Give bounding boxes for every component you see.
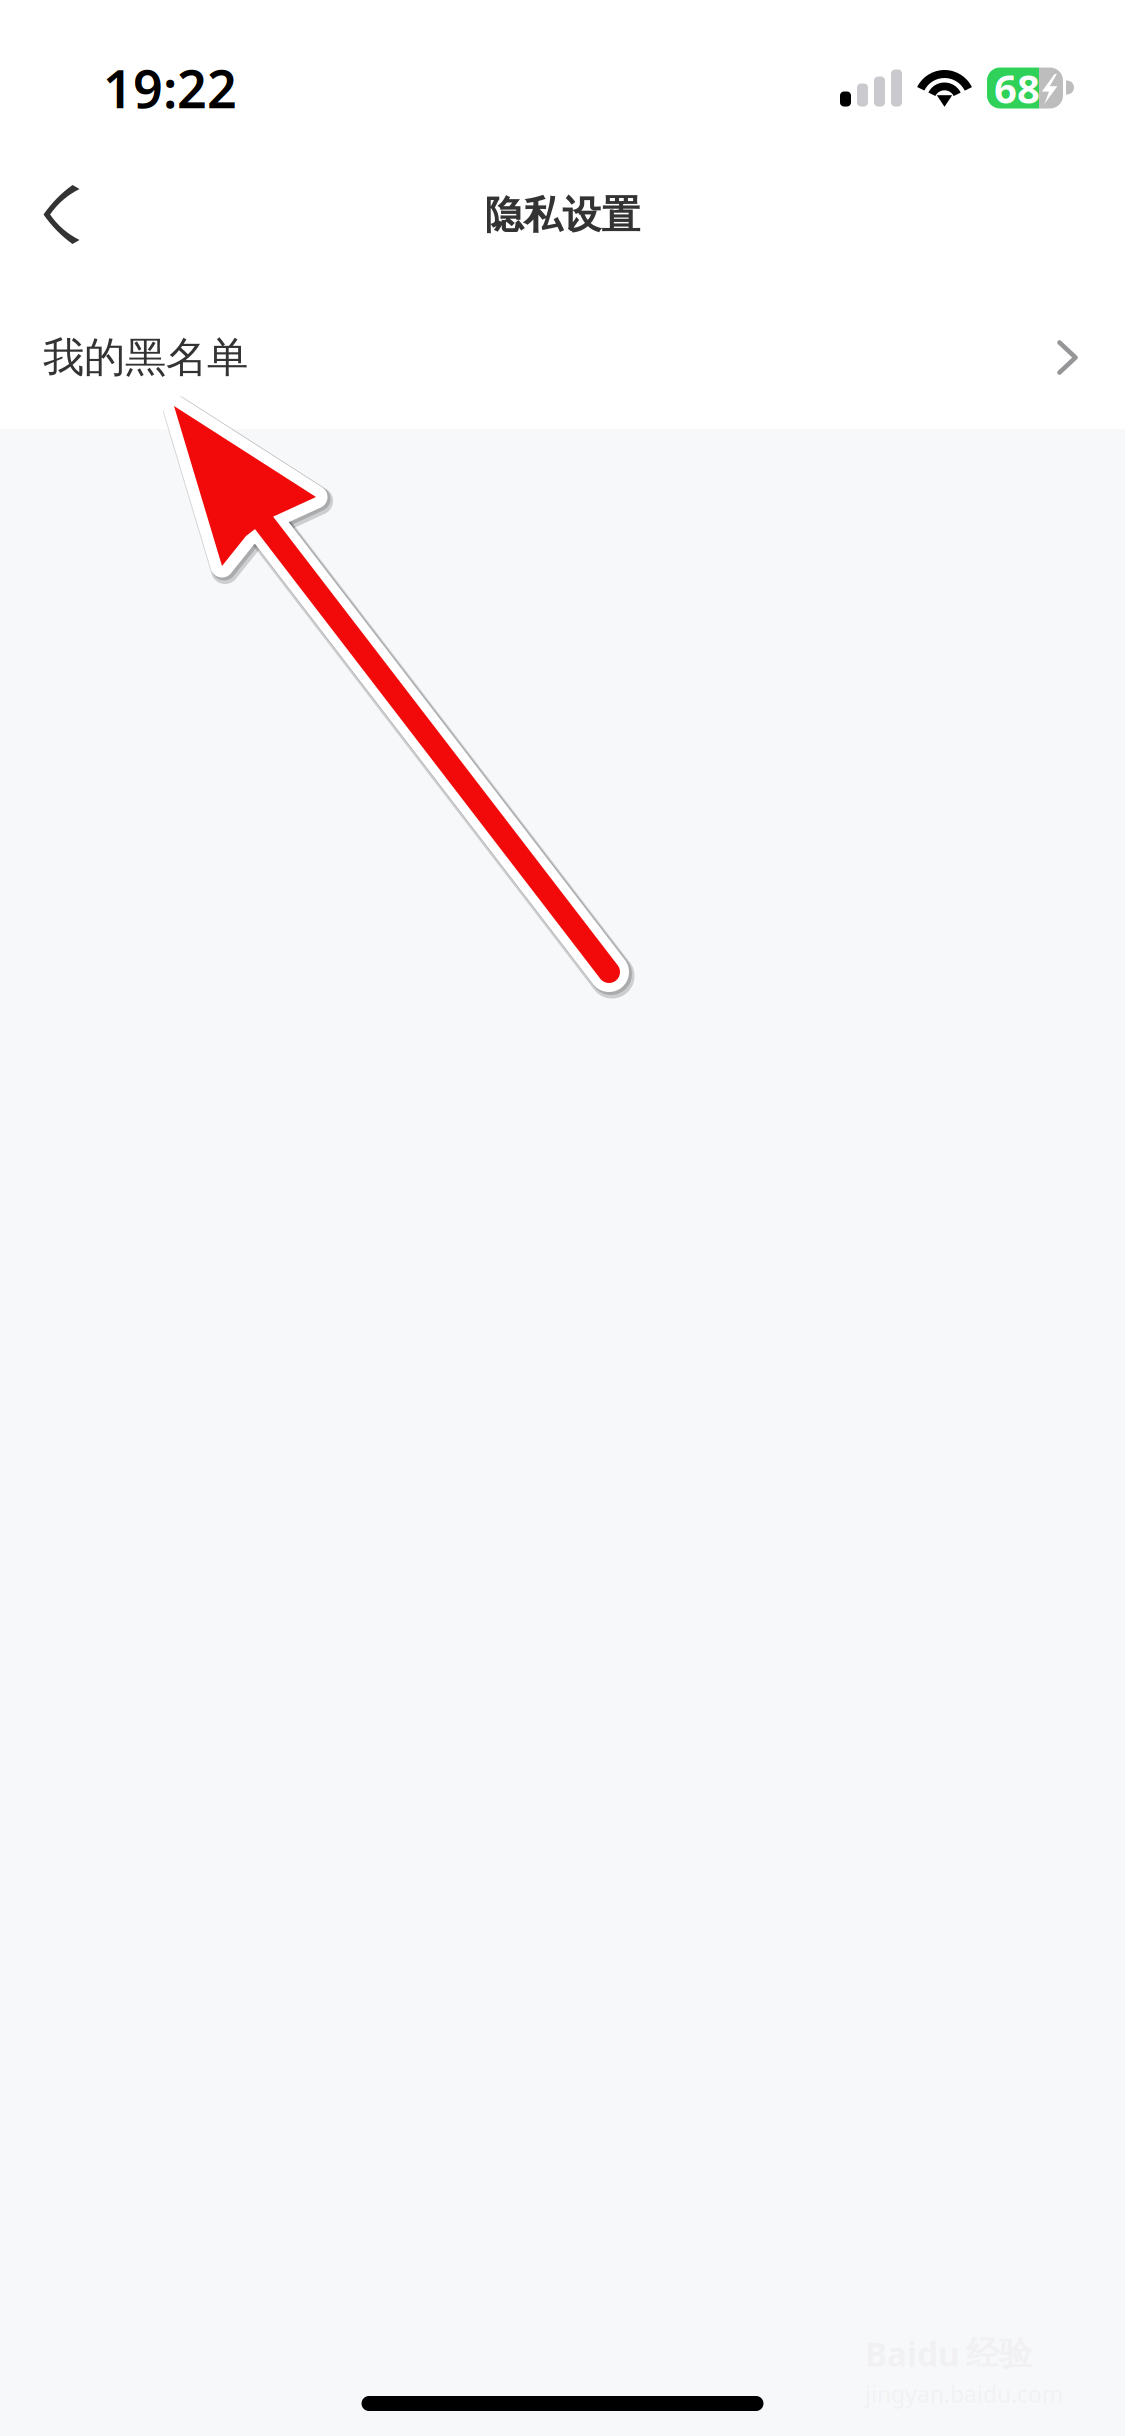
staticText: 经验 [966, 2333, 1032, 2374]
button[interactable]: Back [0, 160, 124, 270]
staticText: 68 [994, 61, 1040, 114]
staticText: 19:22 [103, 53, 237, 123]
staticText: 隐私设置 [484, 191, 640, 239]
staticText: 我的黑名单 [43, 332, 248, 383]
button[interactable]: 我的黑名单 [0, 270, 1125, 429]
